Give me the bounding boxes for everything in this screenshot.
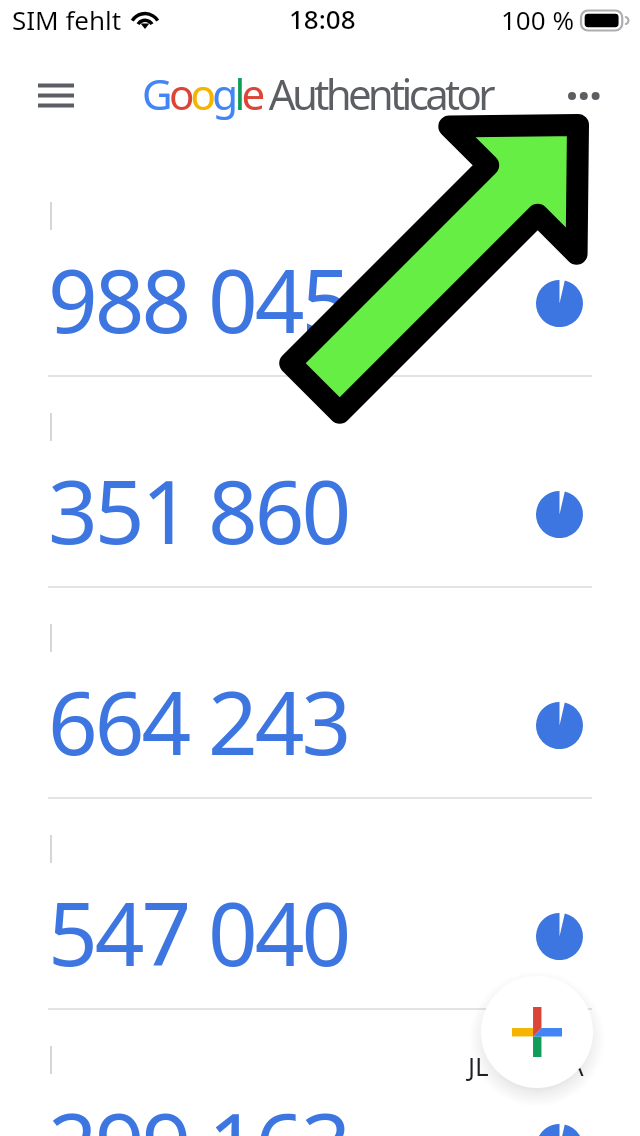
staticText: 100 % [501, 2, 574, 37]
staticText: 299 163 [48, 1084, 349, 1136]
button[interactable]: 988 045 [0, 166, 640, 377]
button[interactable]: 351 860 [0, 377, 640, 588]
button[interactable]: JL FIGMA [0, 1010, 640, 1136]
staticText: 988 045 [48, 240, 349, 358]
button[interactable]: 664 243 [0, 588, 640, 799]
staticText: 547 040 [48, 873, 349, 991]
staticText: 351 860 [48, 451, 349, 569]
staticText: SIM fehlt [12, 2, 122, 37]
button[interactable]: Menu [20, 60, 92, 132]
staticText: JL FIGMA [468, 1048, 584, 1083]
button[interactable]: More options [552, 62, 620, 130]
button[interactable]: 547 040 [0, 799, 640, 1010]
button[interactable]: Add account [481, 976, 593, 1088]
staticText: Google Authenticator [142, 65, 492, 122]
staticText: 18:08 [289, 1, 356, 36]
staticText: 664 243 [48, 662, 349, 780]
